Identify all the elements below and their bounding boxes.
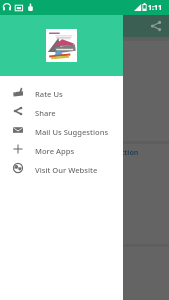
- staticText: 1:11: [148, 3, 162, 13]
- staticText: Rate Us: [35, 89, 63, 99]
- staticText: More Apps: [35, 146, 75, 156]
- button[interactable]: [0, 41, 169, 141]
- button[interactable]: More Apps: [0, 141, 123, 160]
- button[interactable]: Introduction: [0, 144, 169, 244]
- staticText: Visit Our Website: [35, 165, 98, 175]
- staticText: Mail Us Suggestions: [35, 127, 109, 137]
- button[interactable]: [0, 247, 169, 300]
- button[interactable]: Share: [150, 20, 162, 32]
- staticText: Share: [35, 108, 56, 118]
- button[interactable]: Share: [0, 103, 123, 122]
- button[interactable]: Rate Us: [0, 84, 123, 103]
- staticText: Trigonometry Form...: [40, 21, 121, 32]
- button[interactable]: Mail Us Suggestions: [0, 122, 123, 141]
- button[interactable]: Visit Our Website: [0, 160, 123, 179]
- staticText: Introduction: [94, 148, 139, 158]
